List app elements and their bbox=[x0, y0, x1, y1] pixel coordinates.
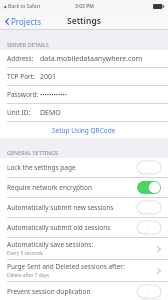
button[interactable]: Back to Safari bbox=[2, 3, 41, 10]
button[interactable]: Unit ID: bbox=[0, 104, 168, 121]
staticText: Prevent session duplication bbox=[7, 287, 137, 296]
other: Toggle on bbox=[137, 181, 161, 194]
button[interactable]: Setup Using QRCode bbox=[0, 122, 168, 138]
staticText: Address: bbox=[7, 54, 34, 63]
button[interactable]: Lock the settings page bbox=[0, 158, 168, 177]
button[interactable]: Automatically save sessions: bbox=[0, 238, 168, 259]
button[interactable]: TCP Port: bbox=[0, 68, 168, 85]
staticText: TCP Port: bbox=[7, 72, 35, 81]
staticText: Setup Using QRCode bbox=[52, 126, 116, 135]
staticText: Automatically submit old sessions bbox=[7, 223, 137, 232]
staticText: Back to Safari bbox=[8, 3, 40, 10]
button[interactable]: Password: bbox=[0, 86, 168, 103]
button[interactable]: Purge Sent and Deleted sessions after: bbox=[0, 260, 168, 281]
staticText: Projects bbox=[11, 16, 41, 27]
staticText: Unit ID: bbox=[7, 108, 31, 117]
other: Toggle off bbox=[137, 201, 161, 214]
button[interactable]: Require network encryption bbox=[0, 178, 168, 197]
other: Toggle off bbox=[137, 285, 161, 298]
staticText: GENERAL SETTINGS bbox=[7, 149, 58, 156]
button[interactable]: Automatically submit old sessions bbox=[0, 218, 168, 237]
button[interactable]: Prevent session duplication bbox=[0, 282, 168, 300]
staticText: data.mobiledataanywhere.com bbox=[40, 54, 143, 64]
staticText: Purge Sent and Deleted sessions after: bbox=[7, 262, 125, 271]
staticText: Settings bbox=[67, 15, 101, 27]
staticText: DEMO bbox=[40, 108, 61, 118]
staticText: Delete after 7 days bbox=[7, 272, 50, 279]
staticText: •••••••••••• bbox=[40, 91, 68, 99]
other: Toggle off bbox=[137, 161, 161, 174]
staticText: 2001 bbox=[40, 72, 57, 82]
staticText: 3:03 PM bbox=[75, 3, 94, 10]
staticText: Require network encryption bbox=[7, 183, 137, 192]
button[interactable]: Address: bbox=[0, 50, 168, 67]
staticText: Lock the settings page bbox=[7, 163, 137, 172]
staticText: Automatically save sessions: bbox=[7, 240, 94, 249]
button[interactable]: Automatically submit new sessions bbox=[0, 198, 168, 217]
other: Toggle off bbox=[137, 221, 161, 234]
button[interactable]: Projects bbox=[3, 14, 43, 29]
staticText: Automatically submit new sessions bbox=[7, 203, 137, 212]
staticText: Password: bbox=[7, 90, 39, 99]
staticText: SERVER DETAILS bbox=[7, 41, 49, 48]
staticText: Every 5 seconds bbox=[7, 250, 43, 257]
